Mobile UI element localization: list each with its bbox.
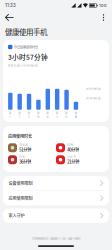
staticText: 浏览器 — [19, 143, 28, 146]
button[interactable]: 微博 — [56, 142, 104, 154]
staticText: 100 — [99, 3, 107, 8]
staticText: 周六 — [56, 111, 59, 118]
staticText: 华为终端有限公司 版权所有 © 2023 保留一切权利 — [32, 237, 80, 240]
staticText: 51分钟 — [19, 147, 31, 153]
staticText: 21分钟 — [67, 159, 79, 165]
button[interactable]: Back — [1, 11, 17, 24]
button[interactable]: 设备使用限制 — [3, 176, 109, 190]
staticText: 周一 — [9, 111, 12, 118]
staticText: 40分钟 — [67, 147, 79, 153]
staticText: 3小时57分钟 — [8, 52, 48, 62]
staticText: 周日 — [65, 111, 68, 118]
button[interactable]: 小红书 — [56, 154, 104, 166]
staticText: 11:33 — [5, 3, 16, 8]
staticText: 应用使用限制 — [8, 195, 32, 201]
staticText: 设备使用限制 — [8, 180, 32, 186]
staticText: 周三 — [27, 111, 30, 118]
staticText: 抖音 — [19, 155, 25, 158]
button[interactable]: 家人守护 — [3, 208, 109, 223]
staticText: 8小时00分钟 — [86, 87, 101, 90]
button[interactable]: More options — [96, 11, 110, 24]
staticText: 周二 — [18, 111, 21, 118]
button[interactable]: 应用使用限制 — [3, 191, 109, 205]
button[interactable]: 抖音 — [8, 154, 56, 166]
staticText: 健康使用手机 — [5, 27, 47, 37]
staticText: 应用使用时长 — [8, 133, 32, 139]
staticText: 较昨日减少4小时30分钟 — [8, 64, 38, 67]
staticText: 周五 — [46, 111, 49, 118]
staticText: 36分钟 — [19, 159, 31, 165]
staticText: 今日 — [74, 111, 77, 118]
staticText: 微博 — [67, 143, 73, 146]
staticText: 周四 — [37, 111, 40, 118]
staticText: 今日屏幕使用时长 — [14, 45, 38, 49]
staticText: 小红书 — [67, 155, 76, 158]
staticText: 家人守护 — [8, 213, 24, 219]
button[interactable]: 浏览器 — [8, 142, 56, 154]
staticText: 4小时00分钟 — [86, 96, 101, 100]
